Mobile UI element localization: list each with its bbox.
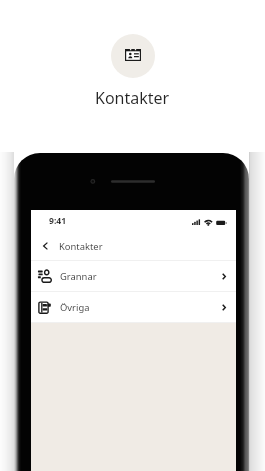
staticText: Kontakter bbox=[59, 240, 103, 253]
other: Grannar bbox=[37, 268, 52, 283]
button[interactable]: Back bbox=[31, 232, 236, 260]
staticText: Grannar bbox=[60, 270, 97, 283]
staticText: 9:41 bbox=[49, 215, 67, 227]
button[interactable]: Kontakter bbox=[111, 34, 155, 78]
button[interactable]: Övriga bbox=[31, 292, 236, 322]
staticText: Kontakter bbox=[95, 87, 170, 109]
other: Övriga bbox=[38, 301, 51, 314]
staticText: Övriga bbox=[60, 301, 90, 314]
button[interactable]: Grannar bbox=[31, 261, 236, 291]
other: Back bbox=[43, 242, 48, 250]
